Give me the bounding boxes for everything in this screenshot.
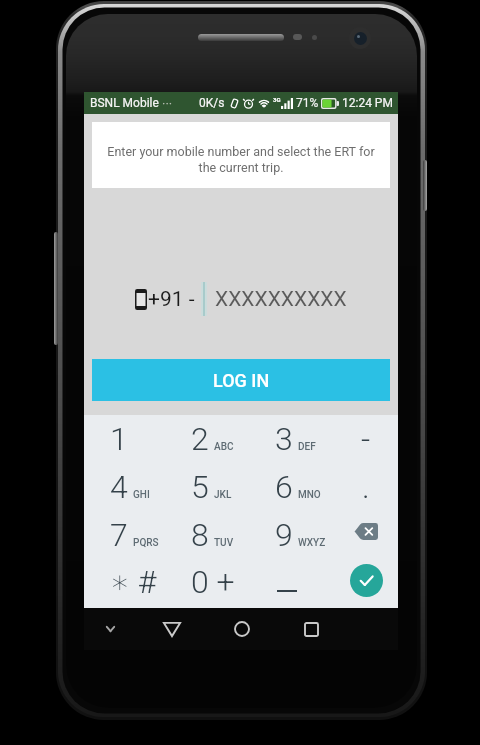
staticText: ··· xyxy=(162,96,173,111)
staticText: 8 xyxy=(191,516,209,552)
button[interactable] xyxy=(84,415,163,463)
other: Confirm xyxy=(350,564,383,597)
staticText: LOG IN xyxy=(213,370,270,391)
staticText: 12:24 PM xyxy=(342,96,393,110)
staticText: PQRS xyxy=(133,537,159,549)
staticText: 0 + xyxy=(191,563,235,599)
button[interactable] xyxy=(320,559,399,607)
staticText: 4 xyxy=(110,468,128,504)
staticText: 0K/s xyxy=(199,96,225,110)
staticText: 71% xyxy=(296,96,319,110)
staticText: - xyxy=(361,420,371,456)
button[interactable]: +91 - xyxy=(84,282,398,316)
staticText: DEF xyxy=(298,441,316,453)
button[interactable] xyxy=(163,511,242,559)
button[interactable] xyxy=(320,511,399,559)
staticText: 2 xyxy=(191,420,209,456)
button[interactable]: Recent apps xyxy=(276,608,346,650)
button[interactable] xyxy=(163,463,242,511)
staticText: 9 xyxy=(275,516,293,552)
button[interactable] xyxy=(84,559,163,607)
button[interactable] xyxy=(163,415,242,463)
staticText: 7 xyxy=(110,516,128,552)
staticText: 3G xyxy=(273,96,281,103)
staticText: JKL xyxy=(214,489,232,501)
staticText: +91 - xyxy=(148,287,195,312)
button[interactable] xyxy=(84,463,163,511)
staticText: 6 xyxy=(275,468,293,504)
staticText: TUV xyxy=(214,537,234,549)
staticText: ABC xyxy=(214,441,234,453)
button[interactable]: Back xyxy=(136,608,207,650)
button[interactable] xyxy=(241,415,320,463)
staticText: Enter your mobile number and select the … xyxy=(106,144,376,175)
button[interactable]: Home xyxy=(207,608,276,650)
button[interactable] xyxy=(320,463,399,511)
staticText: 3 xyxy=(275,420,293,456)
staticText: . xyxy=(362,468,370,504)
other: Backspace xyxy=(354,523,378,540)
staticText: ∗ # xyxy=(110,563,157,599)
staticText: 1 xyxy=(110,420,128,456)
button[interactable]: LOG IN xyxy=(92,359,390,401)
button[interactable] xyxy=(163,559,242,607)
staticText: MNO xyxy=(298,489,321,501)
button[interactable] xyxy=(241,559,320,607)
staticText: WXYZ xyxy=(298,537,326,549)
staticText: 5 xyxy=(191,468,209,504)
button[interactable] xyxy=(241,463,320,511)
staticText: XXXXXXXXXX xyxy=(215,287,347,312)
button[interactable] xyxy=(84,511,163,559)
staticText: GHI xyxy=(133,489,150,501)
button[interactable] xyxy=(320,415,399,463)
button[interactable]: Hide keyboard xyxy=(84,608,136,650)
staticText: BSNL Mobile xyxy=(90,96,159,110)
button[interactable] xyxy=(241,511,320,559)
